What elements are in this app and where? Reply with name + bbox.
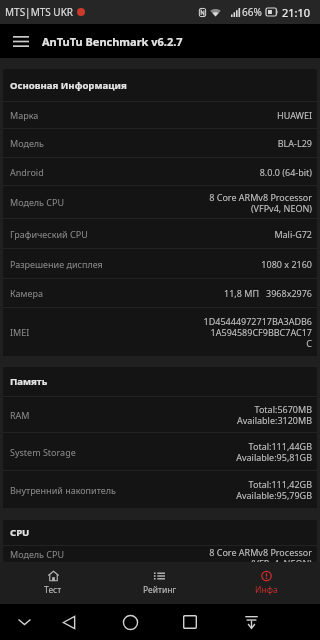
staticText: Android bbox=[10, 166, 44, 178]
staticText: Mali-G72 bbox=[274, 228, 312, 240]
staticText: Рейтинг bbox=[143, 584, 177, 596]
staticText: 66% bbox=[242, 5, 262, 19]
staticText: Основная Информация bbox=[10, 79, 127, 92]
button[interactable]: Тест bbox=[0, 562, 106, 604]
staticText: Тест bbox=[44, 584, 62, 596]
staticText: AnTuTu Benchmark v6.2.7 bbox=[42, 34, 183, 49]
staticText: 1080 x 2160 bbox=[261, 258, 312, 270]
staticText: Модель CPU bbox=[10, 196, 65, 208]
staticText: BLA-L29 bbox=[277, 137, 312, 149]
staticText: Total:111,44GB Available:95,81GB bbox=[236, 440, 312, 463]
staticText: Внутренний накопитель bbox=[10, 484, 116, 496]
button[interactable]: Back bbox=[48, 604, 90, 640]
staticText: Камера bbox=[10, 287, 43, 299]
staticText: 11,8 МП 3968x2976 bbox=[224, 287, 312, 299]
button[interactable]: Download bbox=[221, 604, 281, 640]
staticText: Графический CPU bbox=[10, 228, 88, 240]
button[interactable]: Инфа bbox=[213, 562, 320, 604]
button[interactable]: Home bbox=[100, 604, 160, 640]
staticText: Инфа bbox=[255, 584, 278, 596]
staticText: RAM bbox=[10, 409, 30, 421]
staticText: 8 Core ARMv8 Processor (VFPv4, NEON) bbox=[209, 546, 312, 562]
staticText: Память bbox=[10, 375, 48, 388]
staticText: 1D45444972717BA3ADB6 1A594589CF9BBC7AC17… bbox=[203, 315, 312, 349]
button[interactable]: Hide keyboard bbox=[0, 604, 48, 640]
staticText: System Storage bbox=[10, 446, 76, 458]
staticText: Модель CPU bbox=[10, 548, 65, 560]
staticText: 8 Core ARMv8 Processor (VFPv4, NEON) bbox=[209, 191, 312, 214]
staticText: CPU bbox=[10, 526, 30, 539]
button[interactable]: Recent apps bbox=[160, 604, 220, 640]
staticText: IMEI bbox=[10, 326, 30, 338]
staticText: 8.0.0 (64-bit) bbox=[259, 166, 312, 178]
staticText: Модель bbox=[10, 137, 45, 149]
button[interactable]: Рейтинг bbox=[106, 562, 213, 604]
staticText: Total:111,42GB Available:95,79GB bbox=[236, 478, 312, 501]
button[interactable]: Open navigation menu bbox=[0, 24, 42, 58]
staticText: 21:10 bbox=[282, 5, 311, 20]
staticText: HUAWEI bbox=[277, 109, 312, 121]
staticText: Total:5670MB Available:3120MB bbox=[236, 403, 312, 426]
staticText: Марка bbox=[10, 109, 39, 121]
staticText: Разрешение дисплея bbox=[10, 258, 103, 270]
staticText: MTS|MTS UKR bbox=[5, 5, 74, 19]
